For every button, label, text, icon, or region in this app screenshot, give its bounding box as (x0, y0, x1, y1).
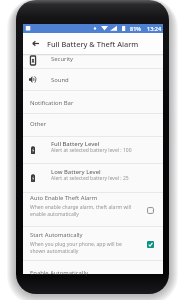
staticText: Start Automatically (30, 231, 83, 239)
staticText: Full Battery & Theft Alarm (47, 39, 139, 49)
button[interactable]: Auto Enable Theft Alarm (23, 193, 163, 226)
button[interactable]: Back (27, 33, 44, 54)
staticText: Other (30, 120, 47, 128)
staticText: Alert at selected battery level : 100 (51, 147, 132, 154)
button[interactable]: Sound (23, 69, 163, 90)
staticText: When enable charge alarm, theft alarm wi… (30, 204, 132, 217)
button[interactable]: Start Automatically (23, 227, 163, 260)
button[interactable]: Enable Automatically (23, 261, 163, 283)
button[interactable]: Full Battery Level (23, 137, 163, 163)
staticText: Auto Enable Theft Alarm (30, 194, 98, 202)
button[interactable]: Low Battery Level (23, 164, 163, 192)
staticText: Alert at selected battery level : 25 (51, 175, 129, 182)
staticText: Security (51, 55, 74, 63)
staticText: 81% (130, 25, 141, 32)
staticText: Full Battery Level (51, 140, 100, 148)
staticText: 13:24 (147, 25, 162, 32)
button[interactable]: Other (23, 114, 163, 136)
staticText: When you plug your phone, app will be sh… (30, 241, 122, 254)
staticText: Enable Automatically (30, 269, 88, 277)
staticText: Notification Bar (30, 99, 74, 107)
staticText: Low Battery Level (51, 168, 101, 176)
button[interactable]: Security (23, 53, 163, 68)
staticText: Sound (51, 76, 69, 84)
button[interactable]: Notification Bar (23, 91, 163, 113)
